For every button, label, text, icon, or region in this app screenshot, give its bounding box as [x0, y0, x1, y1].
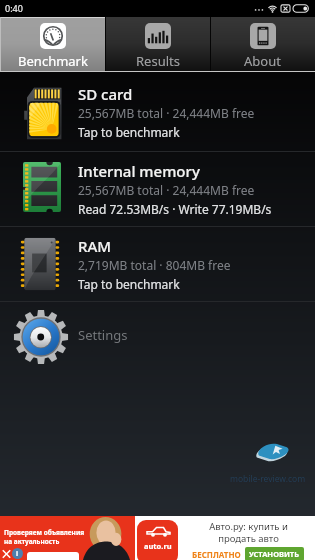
button[interactable]: УСТАНОВИТЬ — [245, 547, 304, 560]
staticText: mobile-review.com — [230, 473, 306, 485]
staticText: RAM — [78, 236, 112, 256]
staticText: Settings — [78, 326, 128, 344]
staticText: Проверяем объявления на актуальность — [4, 528, 85, 546]
staticText: БЕСПЛАТНО — [192, 549, 241, 560]
button[interactable]: About — [210, 17, 315, 71]
staticText: Results — [136, 52, 180, 70]
button[interactable]: Internal memory — [0, 152, 315, 226]
button[interactable]: Проверяем объявления на актуальность — [0, 516, 315, 560]
staticText: Авто.ру: купить и продать авто — [209, 520, 288, 544]
staticText: Tap to benchmark — [78, 124, 180, 140]
staticText: УСТАНОВИТЬ — [249, 549, 300, 559]
staticText: Tap to benchmark — [78, 276, 180, 292]
staticText: 0:40 — [5, 2, 23, 14]
staticText: i — [16, 549, 19, 559]
button[interactable]: RAM — [0, 227, 315, 301]
staticText: 25,567MB total · 24,444MB free — [78, 105, 255, 121]
button[interactable]: Benchmark — [0, 17, 105, 71]
staticText: 2,719MB total · 804MB free — [78, 257, 231, 273]
staticText: Read 72.53MB/s · Write 77.19MB/s — [78, 201, 272, 217]
staticText: auto.ru — [144, 541, 172, 551]
button[interactable]: Settings — [0, 302, 315, 372]
staticText: About — [244, 52, 281, 70]
staticText: Internal memory — [78, 161, 200, 181]
staticText: 25,567MB total · 24,444MB free — [78, 182, 255, 198]
button[interactable]: Results — [105, 17, 210, 71]
staticText: SD card — [78, 84, 133, 104]
button[interactable]: SD card — [0, 72, 315, 151]
staticText: Benchmark — [18, 52, 88, 70]
